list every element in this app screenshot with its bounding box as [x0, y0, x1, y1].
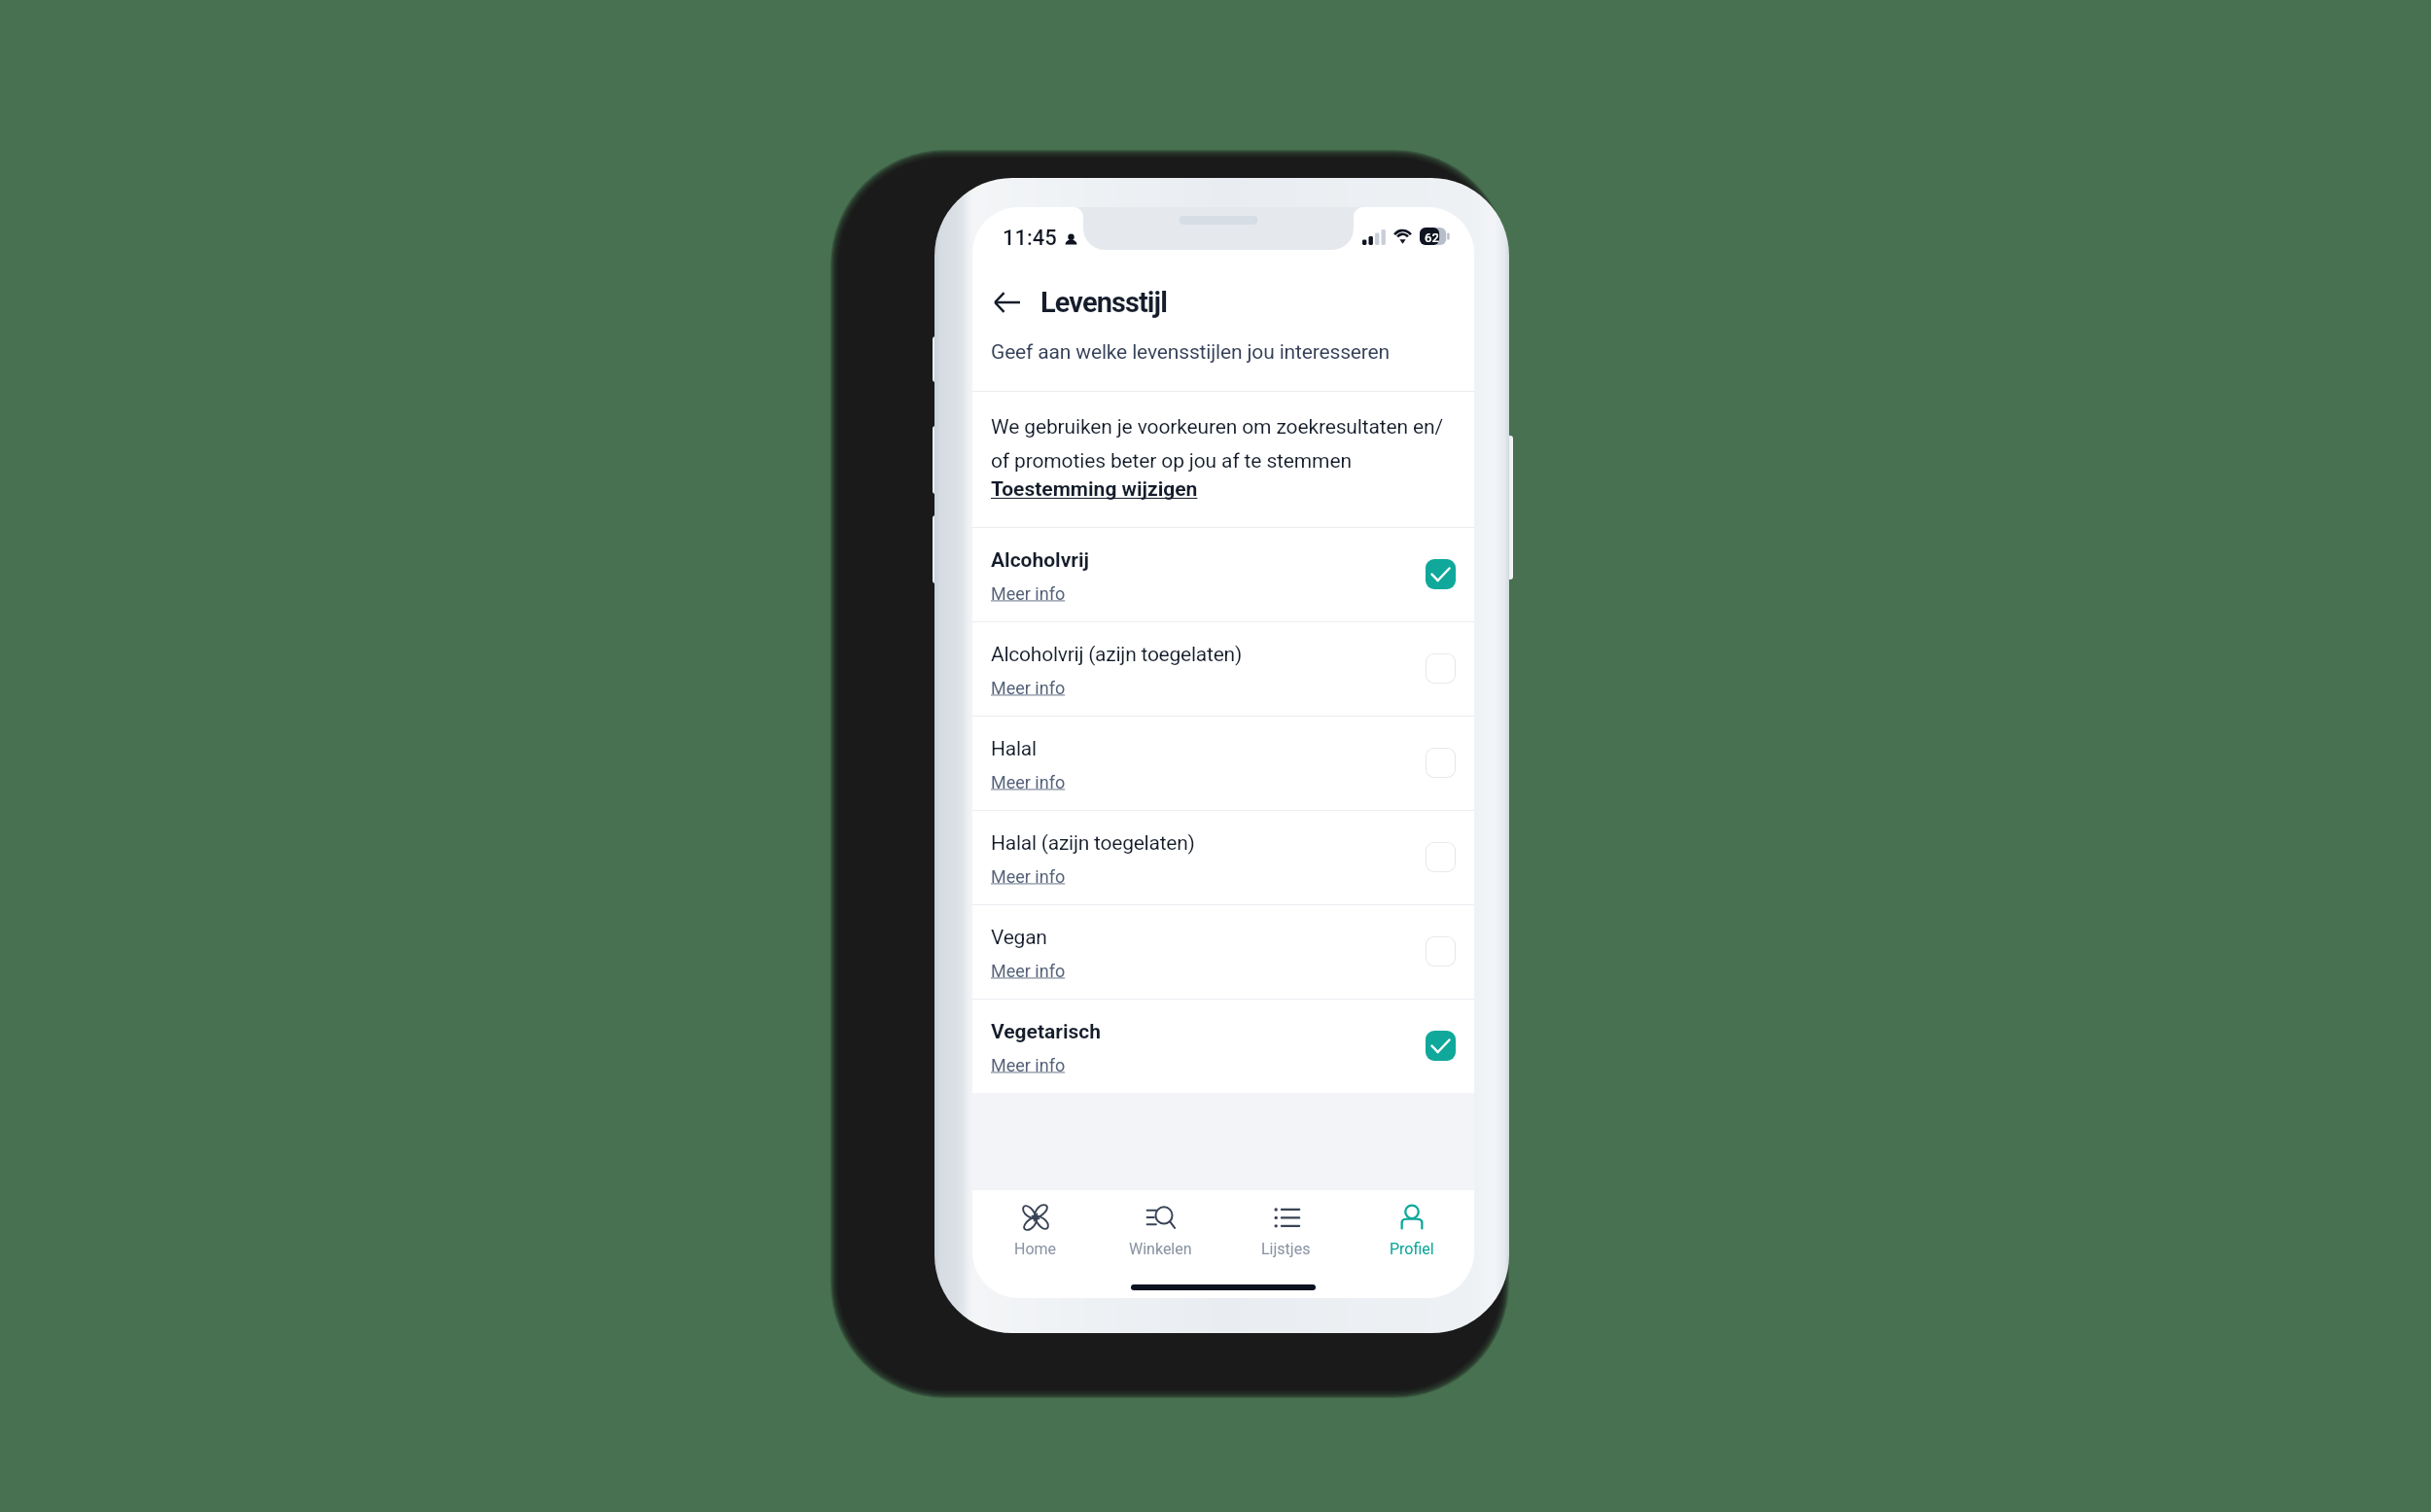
- button[interactable]: Not selected: [1426, 842, 1456, 872]
- staticText: Toestemming wijzigen: [991, 477, 1198, 502]
- button[interactable]: Vegetarisch: [972, 999, 1474, 1093]
- staticText: Geef aan welke levensstijlen jou interes…: [991, 340, 1390, 365]
- staticText: Meer info: [991, 961, 1066, 981]
- staticText: Meer info: [991, 866, 1066, 887]
- staticText: Winkelen: [1129, 1240, 1192, 1258]
- staticText: Profiel: [1390, 1240, 1434, 1258]
- staticText: Levensstijl: [1040, 286, 1167, 319]
- staticText: We gebruiken je voorkeuren om zoekresult…: [991, 415, 1444, 473]
- button[interactable]: Halal: [972, 716, 1474, 810]
- staticText: Home: [1014, 1240, 1057, 1258]
- button[interactable]: Back: [978, 281, 1035, 324]
- button[interactable]: Lijstjes: [1223, 1190, 1349, 1298]
- button[interactable]: Meer info: [991, 772, 1066, 792]
- staticText: Vegan: [991, 926, 1047, 950]
- staticText: 11:45: [1003, 226, 1057, 251]
- staticText: Meer info: [991, 1055, 1066, 1075]
- button[interactable]: Meer info: [991, 961, 1066, 981]
- staticText: Halal (azijn toegelaten): [991, 831, 1195, 856]
- staticText: Meer info: [991, 583, 1066, 604]
- staticText: 62: [1425, 230, 1439, 245]
- button[interactable]: Toestemming wijzigen: [991, 477, 1198, 502]
- button[interactable]: Not selected: [1426, 748, 1456, 778]
- button[interactable]: Alcoholvrij (azijn toegelaten): [972, 621, 1474, 716]
- staticText: Alcoholvrij (azijn toegelaten): [991, 643, 1242, 667]
- staticText: Alcoholvrij: [991, 548, 1089, 573]
- staticText: Vegetarisch: [991, 1020, 1102, 1044]
- staticText: Meer info: [991, 678, 1066, 698]
- button[interactable]: Not selected: [1426, 653, 1456, 684]
- button[interactable]: Halal (azijn toegelaten): [972, 810, 1474, 904]
- button[interactable]: Meer info: [991, 866, 1066, 887]
- button[interactable]: Meer info: [991, 678, 1066, 698]
- button[interactable]: Meer info: [991, 583, 1066, 604]
- button[interactable]: Not selected: [1426, 936, 1456, 967]
- button[interactable]: Vegan: [972, 904, 1474, 999]
- button[interactable]: Profiel: [1349, 1190, 1474, 1298]
- button[interactable]: Alcoholvrij: [972, 527, 1474, 621]
- staticText: Halal: [991, 737, 1037, 761]
- button[interactable]: Meer info: [991, 1055, 1066, 1075]
- button[interactable]: Selected: [1426, 1031, 1456, 1061]
- button[interactable]: Selected: [1426, 559, 1456, 589]
- staticText: Meer info: [991, 772, 1066, 792]
- button[interactable]: Winkelen: [1098, 1190, 1223, 1298]
- staticText: Lijstjes: [1261, 1240, 1311, 1258]
- button[interactable]: Home: [972, 1190, 1098, 1298]
